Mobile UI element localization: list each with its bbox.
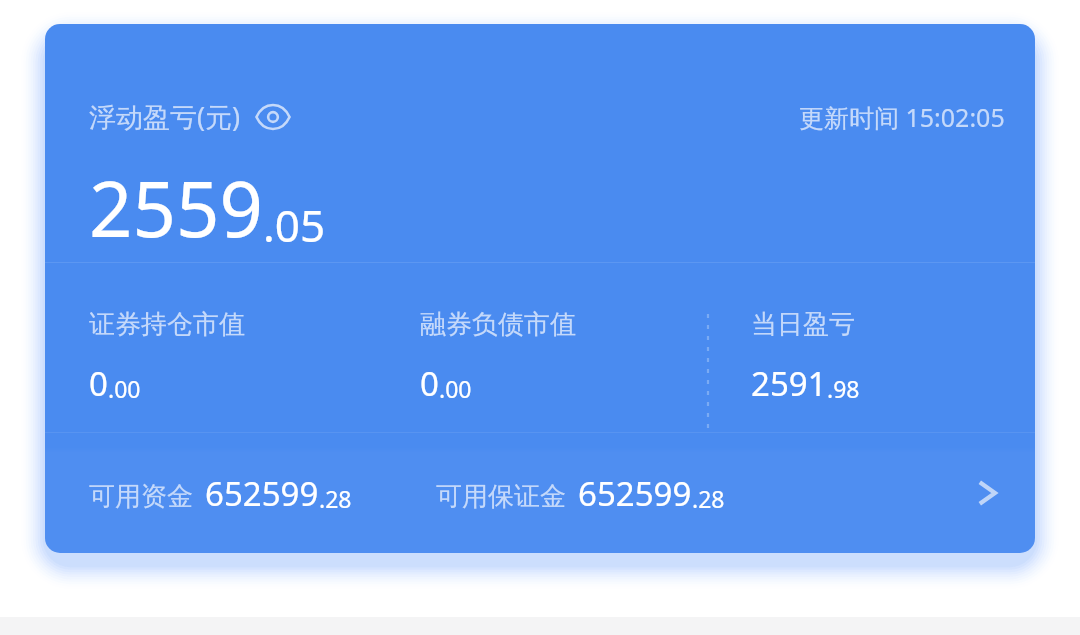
- button[interactable]: 当日盈亏: [751, 308, 860, 406]
- staticText: 融券负债市值: [420, 308, 576, 341]
- button[interactable]: 融券负债市值: [420, 308, 576, 406]
- staticText: 更新时间 15:02:05: [799, 100, 1005, 134]
- staticText: .28: [319, 483, 352, 514]
- staticText: 证券持仓市值: [89, 308, 245, 341]
- staticText: 2591: [751, 361, 827, 406]
- button[interactable]: 可用资金: [45, 433, 1035, 553]
- staticText: 可用保证金: [436, 480, 566, 513]
- staticText: .05: [263, 195, 326, 255]
- staticText: 0: [89, 361, 108, 406]
- staticText: .00: [439, 373, 472, 404]
- other: 隐藏金额: [255, 99, 291, 135]
- staticText: 652599: [205, 471, 319, 516]
- button[interactable]: 浮动盈亏(元): [89, 98, 291, 135]
- staticText: 0: [420, 361, 439, 406]
- staticText: .00: [108, 373, 141, 404]
- staticText: 当日盈亏: [751, 308, 855, 341]
- staticText: .98: [827, 373, 860, 404]
- staticText: 2559: [89, 156, 263, 260]
- staticText: 可用资金: [89, 480, 193, 513]
- staticText: 浮动盈亏(元): [89, 98, 241, 135]
- button[interactable]: 证券持仓市值: [89, 308, 245, 406]
- other: 查看详情: [969, 473, 1009, 513]
- staticText: 652599: [578, 471, 692, 516]
- staticText: .28: [692, 483, 725, 514]
